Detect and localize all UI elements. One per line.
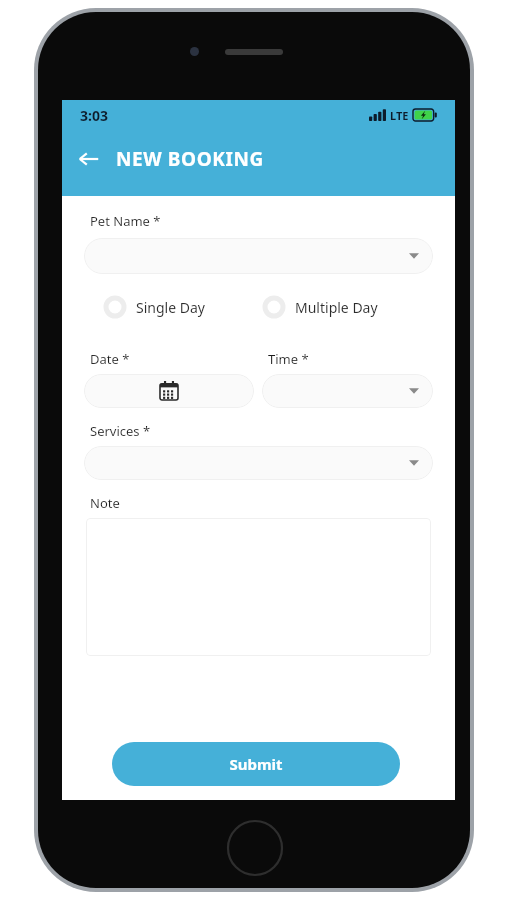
button[interactable]: Submit: [112, 742, 400, 786]
staticText: Note: [90, 494, 120, 512]
button[interactable]: Open dropdown: [262, 374, 433, 408]
staticText: Services *: [90, 422, 151, 440]
button[interactable]: Pick date: [84, 374, 254, 408]
staticText: NEW BOOKING: [116, 146, 264, 172]
button[interactable]: Multiple Day: [263, 296, 378, 318]
staticText: Multiple Day: [295, 298, 378, 317]
staticText: 3:03: [80, 106, 108, 125]
staticText: Date *: [90, 350, 130, 368]
button[interactable]: Back: [68, 138, 110, 180]
button[interactable]: Single Day: [104, 296, 205, 318]
staticText: LTE: [390, 108, 409, 123]
staticText: Time *: [268, 350, 309, 368]
button[interactable]: Open dropdown: [84, 446, 433, 480]
staticText: Single Day: [136, 298, 205, 317]
button[interactable]: Open dropdown: [84, 238, 433, 274]
staticText: Submit: [229, 754, 283, 774]
staticText: Pet Name *: [90, 212, 161, 230]
